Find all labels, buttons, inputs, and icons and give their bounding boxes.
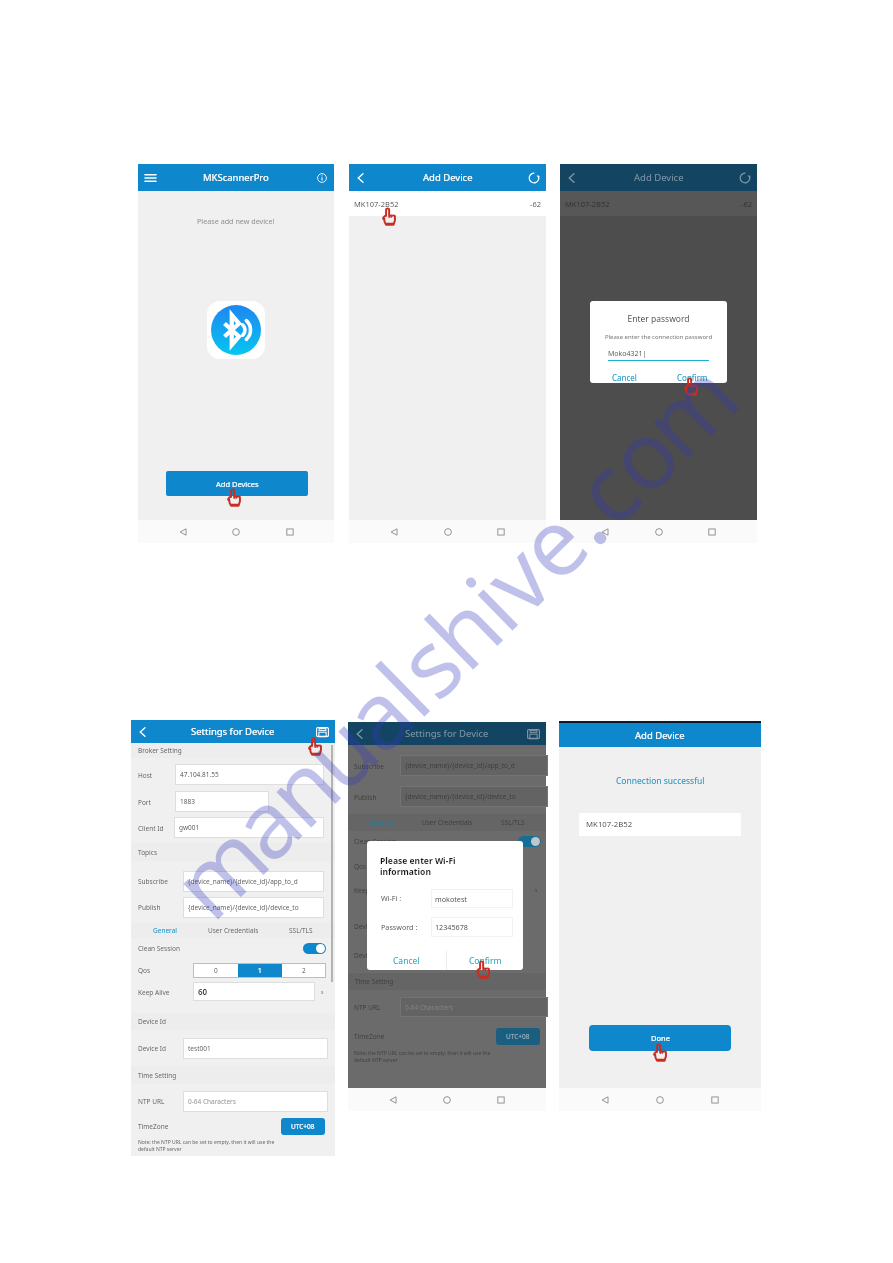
button[interactable]: Refresh: [737, 170, 752, 185]
staticText: 2: [302, 966, 306, 975]
button[interactable]: UTC+08: [496, 1028, 540, 1045]
staticText: Note: the NTP URL can be set to empty, t…: [354, 1050, 491, 1064]
button[interactable]: Back: [385, 523, 403, 541]
staticText: -62: [530, 199, 541, 209]
button[interactable]: Home: [651, 1091, 669, 1109]
button[interactable]: General: [131, 923, 199, 938]
button[interactable]: Save: [315, 724, 330, 739]
button[interactable]: User Credentials: [414, 814, 480, 831]
button[interactable]: {device_name}/{device_id}/app_to_d: [188, 871, 324, 892]
staticText: Confirm: [677, 372, 708, 383]
button[interactable]: Back: [174, 523, 192, 541]
staticText: Cancel: [612, 372, 637, 383]
button[interactable]: Home: [650, 523, 668, 541]
button[interactable]: Recents: [492, 1091, 510, 1109]
staticText: MK107-2B52: [565, 199, 610, 209]
button[interactable]: MK107-2B52: [579, 813, 741, 836]
button[interactable]: 60: [198, 982, 315, 1001]
staticText: mokotest: [435, 894, 467, 904]
button[interactable]: {device_name}/{device_id}/app_to_d: [405, 755, 548, 776]
button[interactable]: Add Devices: [166, 471, 308, 496]
staticText: MK107-2B52: [354, 199, 399, 209]
button[interactable]: Recents: [706, 1091, 724, 1109]
button[interactable]: Back: [353, 171, 367, 185]
button[interactable]: {device_name}/{device_id}/device_to: [188, 897, 324, 918]
button[interactable]: Confirm: [658, 369, 727, 383]
staticText: Client Id: [138, 824, 164, 833]
staticText: Publish: [138, 903, 161, 912]
staticText: Qos: [354, 862, 367, 871]
staticText: Add Device: [635, 729, 685, 742]
staticText: .: [525, 462, 627, 565]
button[interactable]: Menu: [142, 170, 158, 186]
staticText: SSL/TLS: [501, 818, 525, 827]
staticText: 47.104.81.55: [180, 770, 219, 779]
button[interactable]: General: [348, 814, 414, 831]
staticText: Add Device: [423, 171, 473, 184]
button[interactable]: Home: [438, 1091, 456, 1109]
button[interactable]: 1883: [180, 791, 269, 812]
button[interactable]: test001: [188, 1038, 328, 1059]
button[interactable]: {device_name}/{device_id}/device_to: [405, 786, 548, 807]
staticText: Devi: [354, 922, 368, 931]
button[interactable]: Cancel: [367, 951, 446, 970]
button[interactable]: Back: [596, 523, 614, 541]
button[interactable]: MK107-2B52: [354, 191, 541, 216]
button[interactable]: Confirm: [447, 951, 523, 970]
staticText: UTC+08: [291, 1122, 315, 1131]
button[interactable]: 12345678: [435, 917, 513, 937]
staticText: Cancel: [393, 955, 420, 967]
button[interactable]: Back: [564, 171, 578, 185]
button[interactable]: Recents: [492, 523, 510, 541]
button[interactable]: 0-64 Characters: [188, 1091, 328, 1112]
button[interactable]: Cancel: [590, 369, 658, 383]
staticText: MKScannerPro: [203, 171, 269, 184]
button[interactable]: Home: [227, 523, 245, 541]
staticText: Device Id: [138, 1017, 166, 1026]
button[interactable]: Home: [439, 523, 457, 541]
staticText: i: [437, 549, 538, 651]
staticText: {device_name}/{device_id}/device_to: [405, 792, 516, 801]
staticText: u: [274, 685, 400, 811]
button[interactable]: [303, 943, 326, 954]
staticText: Add Device: [634, 171, 684, 184]
button[interactable]: 47.104.81.55: [180, 764, 324, 785]
staticText: Moko4321|: [608, 349, 647, 359]
button[interactable]: User Credentials: [199, 923, 267, 938]
button[interactable]: Back: [596, 1091, 614, 1109]
staticText: Subscribe: [138, 877, 168, 886]
staticText: Connection successful: [616, 775, 705, 787]
button[interactable]: Recents: [281, 523, 299, 541]
staticText: Password :: [381, 922, 418, 932]
button[interactable]: 0-64 Characters: [405, 997, 548, 1017]
button[interactable]: SSL/TLS: [267, 923, 335, 938]
button[interactable]: 0: [193, 963, 238, 978]
staticText: Host: [138, 771, 153, 780]
button[interactable]: Back: [352, 727, 366, 741]
button[interactable]: Recents: [703, 523, 721, 541]
button[interactable]: Save: [526, 726, 541, 741]
button[interactable]: mokotest: [435, 889, 513, 908]
button[interactable]: SSL/TLS: [480, 814, 546, 831]
staticText: 60: [198, 986, 208, 997]
button[interactable]: 1: [238, 963, 282, 978]
staticText: Qos: [138, 966, 151, 975]
staticText: s: [368, 602, 484, 719]
button[interactable]: [518, 836, 541, 847]
staticText: TimeZone: [138, 1122, 169, 1131]
button[interactable]: Back: [384, 1091, 402, 1109]
button[interactable]: Refresh: [526, 170, 541, 185]
staticText: s: [321, 989, 324, 996]
staticText: NTP URL: [354, 1003, 381, 1012]
button[interactable]: 2: [282, 963, 326, 978]
button[interactable]: Done: [589, 1025, 731, 1051]
button[interactable]: Info: [315, 171, 329, 185]
button[interactable]: MK107-2B52: [565, 191, 752, 216]
button[interactable]: gw001: [179, 817, 324, 838]
staticText: User Credentials: [422, 818, 473, 827]
button[interactable]: UTC+08: [281, 1118, 325, 1135]
staticText: Clean Session: [138, 944, 180, 953]
staticText: Time Setting: [138, 1071, 177, 1080]
staticText: 0-64 Characters: [405, 1003, 453, 1012]
button[interactable]: Back: [135, 725, 149, 739]
